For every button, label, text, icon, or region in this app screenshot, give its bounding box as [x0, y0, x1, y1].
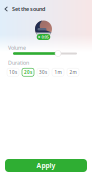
staticText: Apply — [36, 161, 55, 170]
button[interactable]: 30s — [37, 68, 49, 76]
button[interactable]: 20s — [22, 68, 34, 76]
button[interactable]: 10s — [7, 68, 19, 76]
staticText: 10s — [9, 69, 17, 75]
staticText: Duration — [8, 59, 29, 66]
button[interactable]: Back — [0, 2, 12, 16]
staticText: 30s — [39, 69, 47, 75]
staticText: 0:05 — [41, 34, 48, 40]
staticText: 2m — [69, 69, 76, 75]
staticText: Volume — [8, 44, 26, 51]
button[interactable]: Apply — [5, 159, 87, 172]
staticText: Set the sound — [12, 5, 45, 13]
staticText: 1m — [54, 69, 61, 75]
button[interactable]: 2m — [67, 68, 79, 76]
staticText: 20s — [24, 69, 32, 75]
button[interactable]: 1m — [52, 68, 64, 76]
